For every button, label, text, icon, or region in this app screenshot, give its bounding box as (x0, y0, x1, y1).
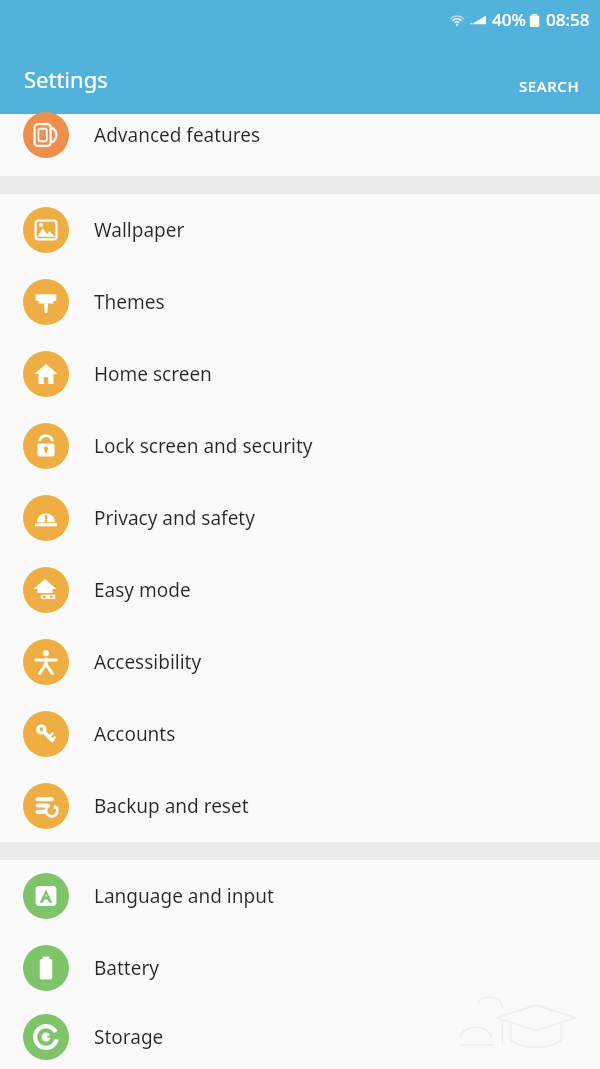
button[interactable]: Advanced features (0, 114, 600, 176)
button[interactable]: Battery (0, 932, 600, 1004)
button[interactable]: Home screen (0, 338, 600, 410)
staticText: Home screen (94, 361, 212, 387)
staticText: Battery (94, 955, 159, 981)
button[interactable]: Accounts (0, 698, 600, 770)
staticText: Easy mode (94, 577, 191, 603)
staticText: Wallpaper (94, 217, 185, 243)
button[interactable]: Themes (0, 266, 600, 338)
staticText: Language and input (94, 883, 274, 909)
staticText: Settings (24, 64, 108, 94)
staticText: Storage (94, 1024, 164, 1050)
staticText: Privacy and safety (94, 505, 255, 531)
button[interactable]: Backup and reset (0, 770, 600, 842)
button[interactable]: Privacy and safety (0, 482, 600, 554)
button[interactable]: Language and input (0, 860, 600, 932)
staticText: 08:58 (546, 8, 590, 31)
staticText: 40% (492, 8, 526, 31)
staticText: Accounts (94, 721, 176, 747)
staticText: Advanced features (94, 122, 261, 148)
staticText: Lock screen and security (94, 433, 313, 459)
staticText: Backup and reset (94, 793, 249, 819)
button[interactable]: SEARCH (501, 66, 600, 114)
staticText: SEARCH (519, 76, 580, 96)
staticText: Themes (94, 289, 165, 315)
button[interactable]: Lock screen and security (0, 410, 600, 482)
button[interactable]: Accessibility (0, 626, 600, 698)
button[interactable]: Easy mode (0, 554, 600, 626)
button[interactable]: Storage (0, 1004, 600, 1069)
staticText: Accessibility (94, 649, 202, 675)
button[interactable]: Wallpaper (0, 194, 600, 266)
